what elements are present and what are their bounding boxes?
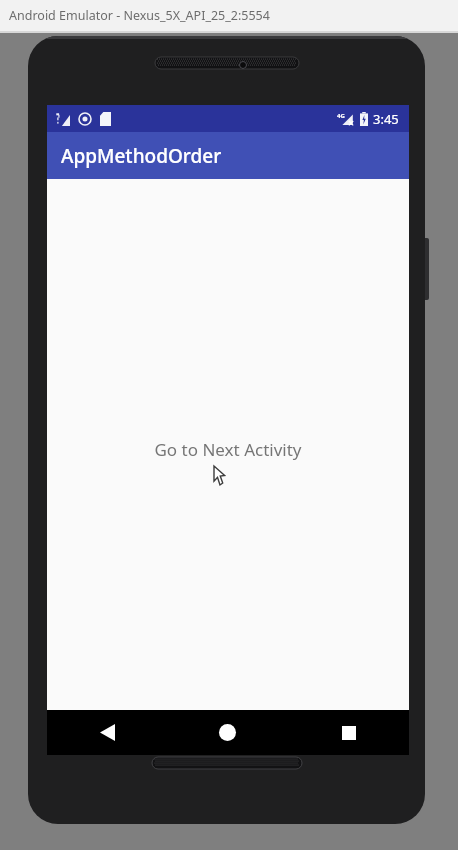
- button[interactable]: Recent apps: [288, 710, 409, 755]
- staticText: Android Emulator - Nexus_5X_API_25_2:555…: [9, 7, 270, 24]
- staticText: 3:45: [373, 110, 399, 128]
- staticText: AppMethodOrder: [61, 143, 222, 169]
- button[interactable]: Home: [167, 710, 288, 755]
- staticText: 4G: [337, 112, 345, 120]
- button[interactable]: Go to Next Activity: [142, 432, 314, 467]
- staticText: Go to Next Activity: [154, 438, 302, 461]
- button[interactable]: Back: [47, 710, 167, 755]
